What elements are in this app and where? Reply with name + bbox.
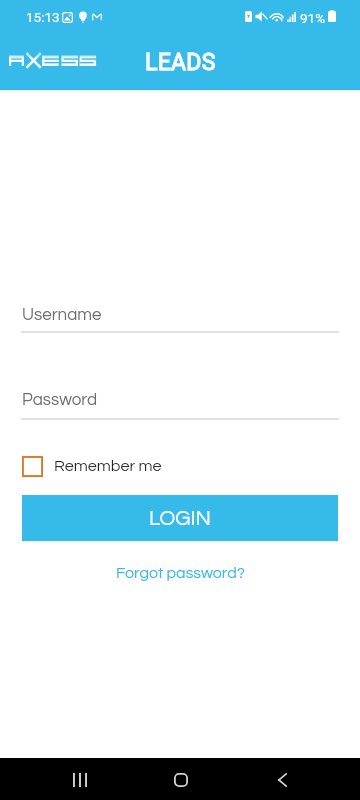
staticText: Username — [22, 306, 102, 324]
button[interactable]: Recent apps — [58, 759, 102, 800]
staticText: LOGIN — [149, 508, 211, 530]
staticText: Password — [22, 391, 98, 409]
button[interactable]: LOGIN — [22, 495, 338, 541]
staticText: 91% — [300, 10, 326, 26]
button[interactable]: Forgot password? — [110, 563, 251, 583]
button[interactable]: Remember me — [22, 452, 162, 481]
staticText: 15:13 — [26, 9, 60, 25]
button[interactable]: Home — [159, 759, 203, 800]
staticText: Remember me — [54, 458, 162, 475]
button[interactable]: Back — [260, 759, 304, 800]
staticText: LEADS — [145, 49, 216, 76]
